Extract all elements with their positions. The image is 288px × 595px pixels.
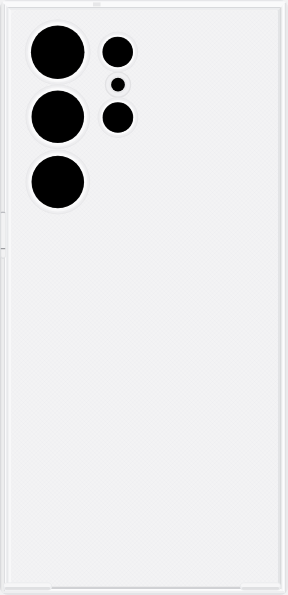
button[interactable]: Phone back with camera array	[0, 0, 288, 595]
